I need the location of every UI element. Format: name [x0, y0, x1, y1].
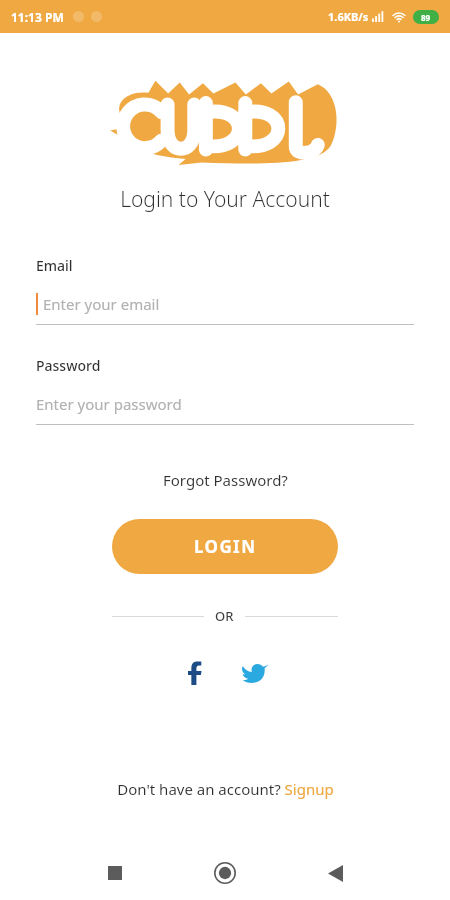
- button[interactable]: Home: [203, 851, 247, 895]
- staticText: Login to Your Account: [0, 185, 450, 214]
- staticText: 89: [421, 12, 431, 23]
- staticText: OR: [215, 607, 234, 625]
- staticText: Email: [36, 256, 73, 275]
- staticText: Don't have an account? Signup: [117, 779, 334, 799]
- staticText: Enter your password: [36, 394, 182, 414]
- staticText: LOGIN: [194, 535, 257, 558]
- button[interactable]: Sign in with Twitter: [235, 653, 275, 693]
- button[interactable]: Back: [313, 851, 357, 895]
- button[interactable]: Enter your password: [36, 391, 414, 417]
- button[interactable]: Enter your email: [36, 291, 414, 317]
- button[interactable]: Recent apps: [93, 851, 137, 895]
- button[interactable]: Sign in with Facebook: [175, 653, 215, 693]
- staticText: 1.6KB/s: [328, 9, 369, 24]
- button[interactable]: LOGIN: [112, 519, 338, 574]
- button[interactable]: Forgot Password?: [0, 467, 450, 493]
- staticText: Forgot Password?: [163, 470, 288, 490]
- button[interactable]: Don't have an account? Signup: [0, 775, 450, 803]
- staticText: 11:13 PM: [11, 9, 64, 25]
- staticText: Password: [36, 356, 101, 375]
- staticText: Enter your email: [43, 294, 160, 314]
